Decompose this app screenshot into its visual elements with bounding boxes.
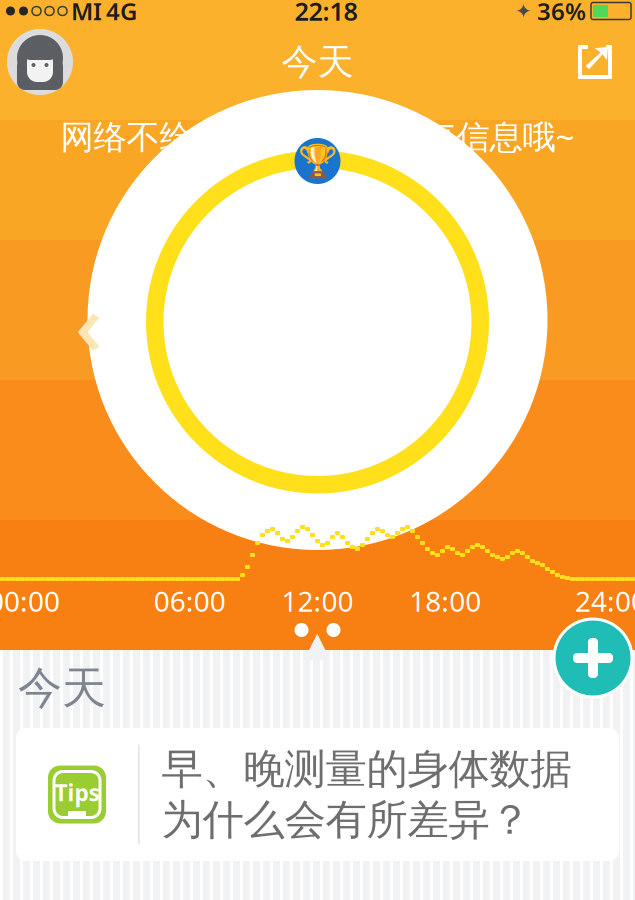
staticText: 今天 (281, 40, 353, 84)
button[interactable]: Profile (0, 28, 80, 96)
staticText: 06:00 (154, 582, 226, 620)
staticText: ▲ (304, 624, 331, 664)
staticText: ‹ (75, 265, 103, 379)
staticText: ➚ (581, 33, 615, 79)
staticText: ✦ (515, 0, 532, 22)
staticText: Tips (54, 777, 99, 807)
staticText: 今天 (18, 661, 106, 715)
staticText: 🏆 (297, 143, 337, 179)
staticText: 网络不给力，无法获取天气信息哦~ (60, 114, 574, 158)
staticText: 12:00 (281, 582, 353, 620)
staticText: 24:00 (575, 582, 635, 620)
staticText: 00:00 (0, 582, 60, 620)
staticText: MI (71, 0, 102, 27)
button[interactable]: Add record (551, 616, 635, 700)
staticText: 18:00 (409, 582, 481, 620)
staticText: 22:18 (294, 0, 357, 28)
staticText: 4G (106, 0, 137, 27)
button[interactable]: Share (555, 28, 635, 96)
staticText: 早、晚测量的身体数据为什么会有所差异？ (161, 744, 571, 845)
button[interactable]: Tips (16, 728, 619, 861)
staticText: 36% (537, 0, 586, 27)
staticText: 17023 (170, 259, 465, 397)
button[interactable]: Previous day (66, 292, 112, 352)
